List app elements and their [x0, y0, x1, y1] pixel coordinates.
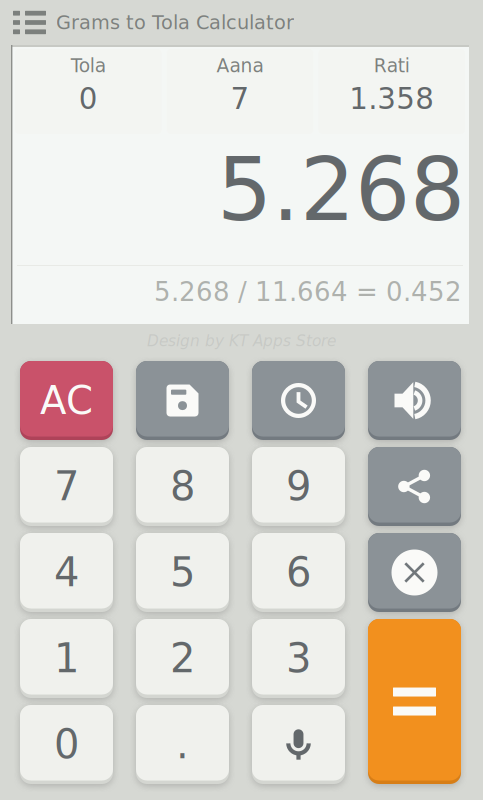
staticText: 8 [170, 463, 195, 510]
button[interactable]: Equals [368, 619, 461, 784]
button[interactable]: All clear [20, 361, 113, 440]
staticText: 7 [54, 463, 79, 510]
button[interactable]: Menu [13, 11, 46, 34]
button[interactable]: 6 [252, 533, 345, 612]
button[interactable]: 5 [136, 533, 229, 612]
button[interactable]: . [136, 705, 229, 784]
staticText: 0 [79, 82, 98, 116]
staticText: Tola [71, 55, 106, 77]
button[interactable]: Voice input [252, 705, 345, 784]
button[interactable]: History [252, 361, 345, 440]
staticText: AC [40, 378, 93, 423]
staticText: 5.268 [217, 140, 465, 240]
staticText: 9 [286, 463, 311, 510]
button[interactable]: 8 [136, 447, 229, 526]
button[interactable]: Clear entry [368, 533, 461, 612]
staticText: 4 [54, 549, 79, 596]
staticText: 1 [54, 635, 79, 682]
staticText: 2 [170, 635, 195, 682]
button[interactable]: 7 [20, 447, 113, 526]
staticText: Aana [216, 55, 263, 77]
staticText: 7 [230, 82, 249, 116]
staticText: Grams to Tola Calculator [56, 11, 294, 34]
staticText: 6 [286, 549, 311, 596]
staticText: 3 [286, 635, 311, 682]
button[interactable]: 0 [20, 705, 113, 784]
button[interactable]: 3 [252, 619, 345, 698]
staticText: Design by KT Apps Store [147, 332, 336, 350]
staticText: 0 [54, 721, 79, 768]
button[interactable]: 9 [252, 447, 345, 526]
button[interactable]: 2 [136, 619, 229, 698]
staticText: 5 [170, 549, 195, 596]
staticText: 1.358 [349, 82, 434, 116]
button[interactable]: Share [368, 447, 461, 526]
button[interactable]: 1 [20, 619, 113, 698]
staticText: 5.268 / 11.664 = 0.452 [154, 277, 462, 307]
staticText: Rati [374, 55, 410, 77]
staticText: . [176, 721, 189, 768]
button[interactable]: 4 [20, 533, 113, 612]
button[interactable]: Sound [368, 361, 461, 440]
button[interactable]: Save [136, 361, 229, 440]
